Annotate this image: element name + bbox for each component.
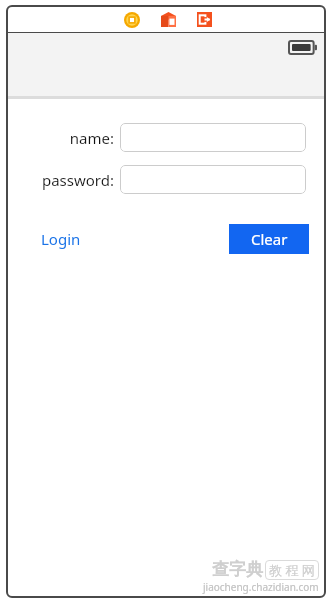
button[interactable]: Record (117, 7, 147, 32)
staticText: 教 程 网 (269, 561, 315, 579)
button[interactable]: Battery (287, 39, 319, 56)
staticText: jiaocheng.chazidian.com (203, 580, 319, 594)
staticText: name: (69, 128, 114, 148)
staticText: password: (41, 170, 114, 190)
button[interactable]: Clear (229, 224, 309, 254)
button[interactable]: Login (35, 223, 87, 255)
button[interactable]: Exit (189, 7, 219, 32)
staticText: Clear (251, 229, 288, 249)
staticText: Login (41, 229, 81, 249)
button[interactable]: Password input (120, 165, 306, 194)
button[interactable]: Name input (120, 123, 306, 152)
staticText: 查字典 (212, 559, 263, 580)
button[interactable]: Package (153, 7, 183, 32)
